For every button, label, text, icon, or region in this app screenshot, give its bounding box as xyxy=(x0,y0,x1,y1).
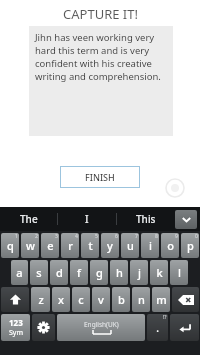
staticText: Sym xyxy=(9,328,23,338)
button[interactable]: t xyxy=(81,233,99,258)
staticText: 7 xyxy=(135,233,138,240)
staticText: Jihn has veen working very hard this ter… xyxy=(35,31,169,83)
staticText: d xyxy=(56,265,63,280)
button[interactable]: Space xyxy=(57,314,145,341)
button[interactable]: m xyxy=(152,287,170,312)
button[interactable]: c xyxy=(72,287,90,312)
staticText: g xyxy=(96,265,103,280)
staticText: FINISH xyxy=(85,171,115,183)
button[interactable]: l xyxy=(170,260,188,285)
staticText: CAPTURE IT! xyxy=(63,5,138,23)
button[interactable]: Settings xyxy=(32,314,55,341)
staticText: 1 xyxy=(15,233,18,240)
button[interactable]: z xyxy=(31,287,50,312)
staticText: j xyxy=(138,265,141,280)
staticText: !? xyxy=(163,314,167,321)
button[interactable]: w xyxy=(21,233,39,258)
staticText: English(UK) xyxy=(84,320,119,329)
staticText: 9 xyxy=(175,233,178,240)
staticText: s xyxy=(36,265,42,280)
button[interactable]: n xyxy=(132,287,150,312)
button[interactable]: More suggestions xyxy=(175,210,197,229)
button[interactable]: r xyxy=(61,233,79,258)
staticText: o xyxy=(167,238,174,253)
staticText: 8 xyxy=(155,233,158,240)
button[interactable]: q xyxy=(1,233,19,258)
button[interactable]: FINISH xyxy=(60,166,140,188)
staticText: c xyxy=(78,292,84,307)
staticText: w xyxy=(26,238,35,253)
button[interactable]: Backspace xyxy=(172,287,199,312)
staticText: h xyxy=(116,265,123,280)
staticText: u xyxy=(127,238,134,253)
staticText: l xyxy=(178,265,181,280)
button[interactable]: i xyxy=(141,233,159,258)
button[interactable]: g xyxy=(90,260,108,285)
button[interactable]: f xyxy=(70,260,88,285)
button[interactable]: v xyxy=(92,287,110,312)
button[interactable]: a xyxy=(11,260,28,285)
staticText: b xyxy=(118,292,125,307)
staticText: q xyxy=(7,238,14,253)
button[interactable]: o xyxy=(161,233,179,258)
staticText: 2 xyxy=(35,233,38,240)
staticText: x xyxy=(58,292,64,307)
button[interactable]: x xyxy=(52,287,70,312)
staticText: 3 xyxy=(55,233,58,240)
staticText: a xyxy=(16,265,23,280)
staticText: I xyxy=(85,212,89,226)
button[interactable]: . xyxy=(147,314,168,341)
staticText: i xyxy=(149,238,152,253)
button[interactable]: u xyxy=(121,233,139,258)
staticText: y xyxy=(107,238,113,253)
button[interactable]: s xyxy=(30,260,48,285)
button[interactable]: This xyxy=(117,207,175,231)
button[interactable]: p xyxy=(181,233,199,258)
staticText: 6 xyxy=(115,233,118,240)
staticText: The xyxy=(20,212,38,226)
staticText: 4 xyxy=(75,233,78,240)
button[interactable]: h xyxy=(110,260,128,285)
staticText: . xyxy=(156,321,159,335)
button[interactable]: Record xyxy=(166,179,184,197)
staticText: t xyxy=(88,238,93,253)
button[interactable]: d xyxy=(50,260,68,285)
staticText: 0 xyxy=(195,233,198,240)
staticText: f xyxy=(77,265,81,280)
staticText: m xyxy=(156,292,167,307)
staticText: 123 xyxy=(9,317,23,328)
button[interactable]: The xyxy=(0,207,57,231)
staticText: e xyxy=(47,238,54,253)
button[interactable]: Enter xyxy=(170,314,199,341)
staticText: 5 xyxy=(95,233,98,240)
button[interactable]: Shift xyxy=(1,287,29,312)
staticText: v xyxy=(98,292,104,307)
button[interactable]: e xyxy=(41,233,59,258)
staticText: n xyxy=(138,292,145,307)
button[interactable]: k xyxy=(150,260,168,285)
staticText: r xyxy=(68,238,73,253)
button[interactable]: Jihn has veen working very hard this ter… xyxy=(29,26,173,136)
staticText: p xyxy=(187,238,194,253)
button[interactable]: y xyxy=(101,233,119,258)
staticText: z xyxy=(38,292,44,307)
staticText: This xyxy=(136,212,156,226)
button[interactable]: b xyxy=(112,287,130,312)
button[interactable]: j xyxy=(130,260,148,285)
staticText: k xyxy=(156,265,163,280)
button[interactable]: Symbols xyxy=(1,314,30,341)
button[interactable]: I xyxy=(58,207,116,231)
